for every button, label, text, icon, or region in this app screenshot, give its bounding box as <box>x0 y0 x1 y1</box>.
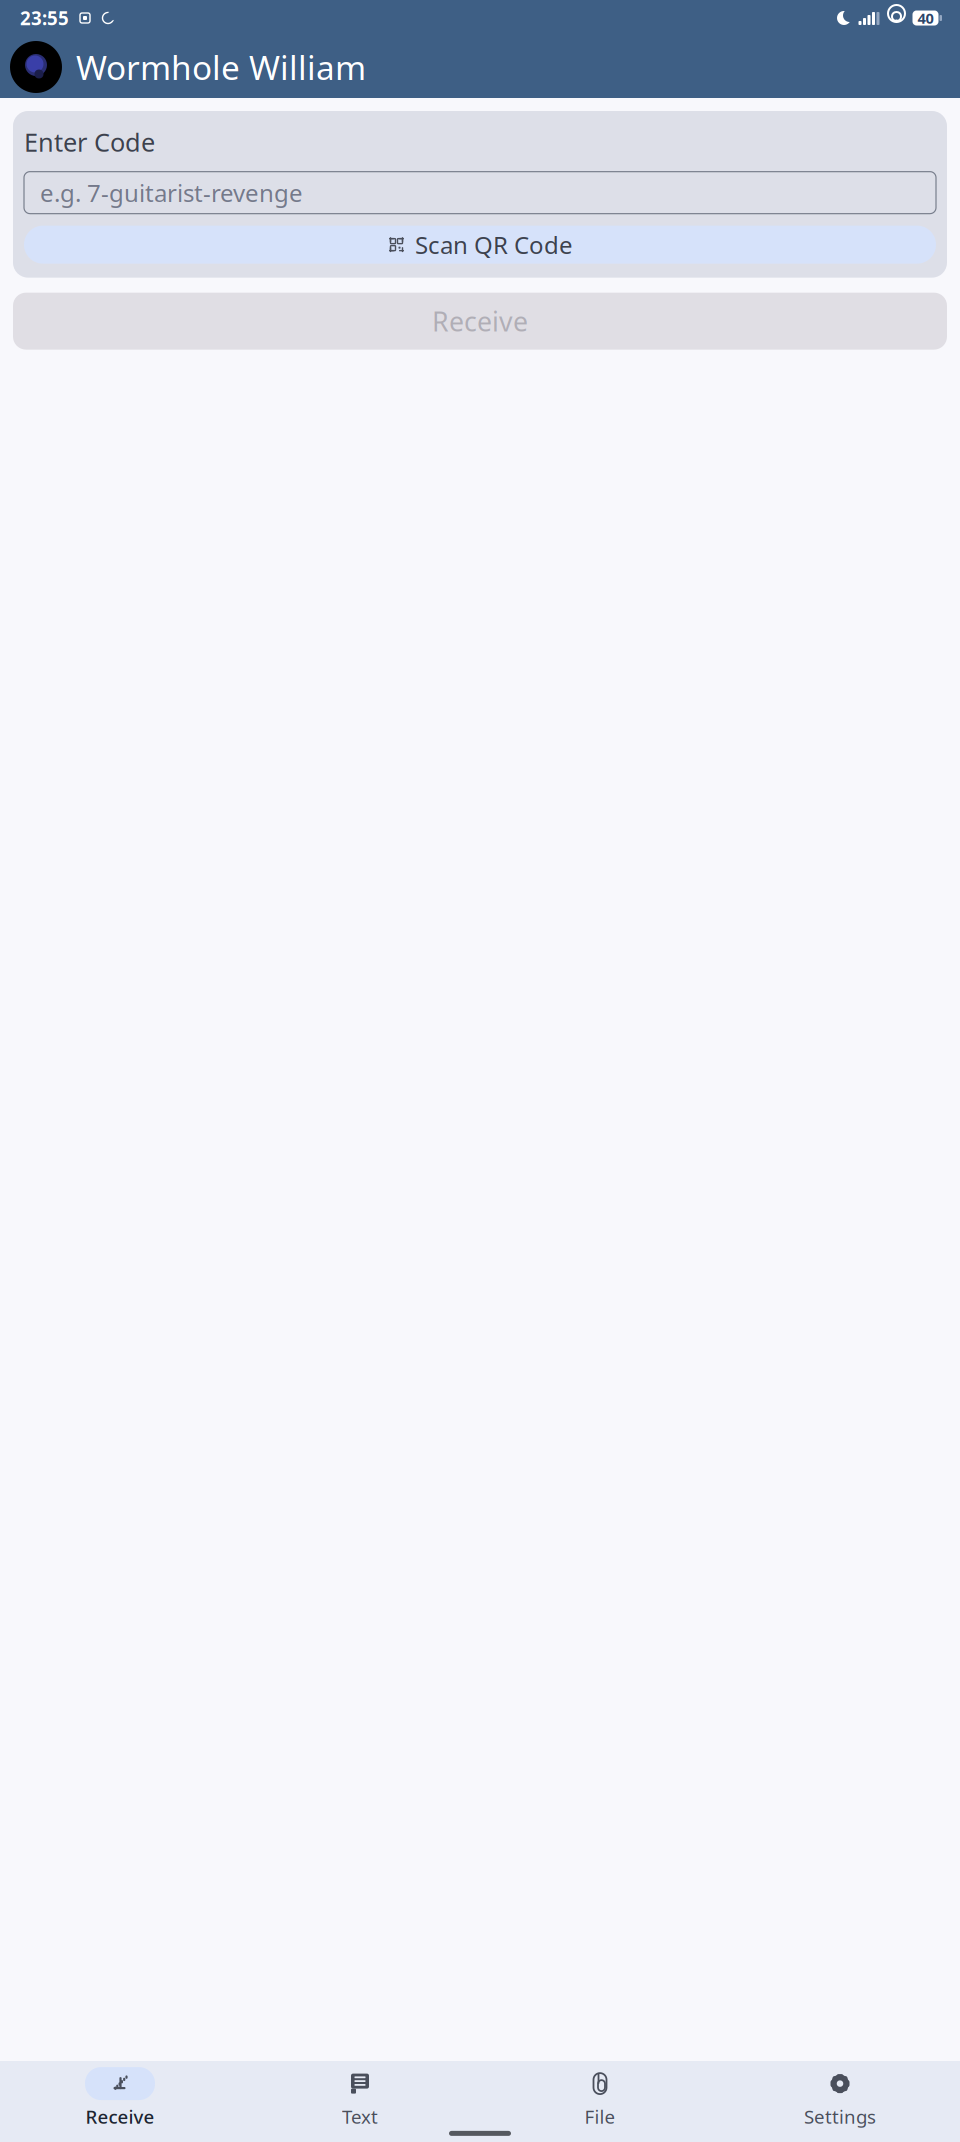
button[interactable]: Scan QR Code <box>24 226 936 264</box>
staticText: Text <box>342 2104 378 2129</box>
staticText: Settings <box>804 2104 876 2129</box>
staticText: File <box>584 2104 615 2129</box>
staticText: e.g. 7-guitarist-revenge <box>40 177 303 209</box>
button[interactable]: Text <box>240 2065 480 2131</box>
staticText: Enter Code <box>24 125 155 159</box>
button[interactable]: File <box>480 2065 720 2131</box>
staticText: 40 <box>917 8 933 28</box>
staticText: Receive <box>432 303 528 339</box>
button[interactable]: Receive <box>0 2065 240 2131</box>
staticText: Receive <box>85 2104 154 2129</box>
button[interactable]: Settings <box>720 2065 960 2131</box>
button[interactable]: Receive <box>13 293 947 350</box>
staticText: Scan QR Code <box>415 229 573 261</box>
staticText: Wormhole William <box>76 45 366 89</box>
staticText: 23:55 <box>20 6 69 30</box>
